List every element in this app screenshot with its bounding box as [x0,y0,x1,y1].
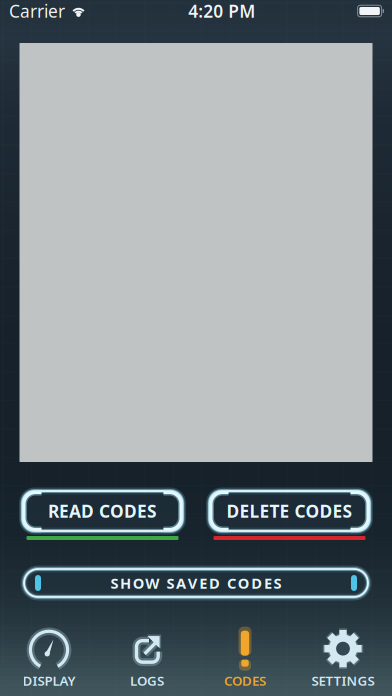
button[interactable]: SETTINGS [294,618,392,696]
staticText: DELETE CODES [226,499,352,522]
button[interactable]: DISPLAY [0,618,98,696]
staticText: 4:20 PM [188,0,255,22]
staticText: SETTINGS [311,672,374,689]
staticText: READ CODES [48,499,157,522]
staticText: CODES [224,672,266,689]
button[interactable]: LOGS [98,618,196,696]
button[interactable]: DELETE CODES [209,491,369,540]
staticText: Carrier [9,0,65,22]
button[interactable]: SHOW SAVED CODES [24,569,368,597]
staticText: DISPLAY [22,672,75,689]
staticText: SHOW SAVED CODES [110,573,281,593]
staticText: LOGS [130,672,164,689]
button[interactable]: CODES [196,618,294,696]
button[interactable]: READ CODES [22,491,182,540]
